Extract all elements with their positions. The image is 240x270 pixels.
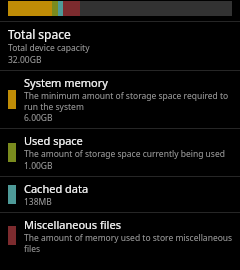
staticText: Total device capacity (8, 42, 90, 54)
staticText: Miscellaneous files (24, 217, 121, 232)
staticText: Used space (24, 133, 83, 148)
button[interactable]: Total space (0, 22, 240, 70)
button[interactable]: Miscellaneous files colour key (0, 213, 240, 258)
staticText: 1.00GB (24, 160, 53, 172)
staticText: The amount of storage space currently be… (24, 148, 225, 160)
staticText: The minimum amount of storage space requ… (24, 90, 234, 112)
button[interactable]: Cached data colour key (0, 177, 240, 212)
button[interactable]: Used space colour key (0, 129, 240, 176)
staticText: 32.00GB (8, 54, 42, 66)
staticText: 6.00GB (24, 112, 53, 124)
staticText: Cached data (24, 181, 89, 196)
staticText: Total space (8, 26, 71, 42)
staticText: The amount of memory used to store misce… (24, 232, 234, 254)
staticText: System memory (24, 75, 108, 90)
button[interactable]: System memory colour key (0, 71, 240, 128)
staticText: 138MB (24, 196, 52, 208)
